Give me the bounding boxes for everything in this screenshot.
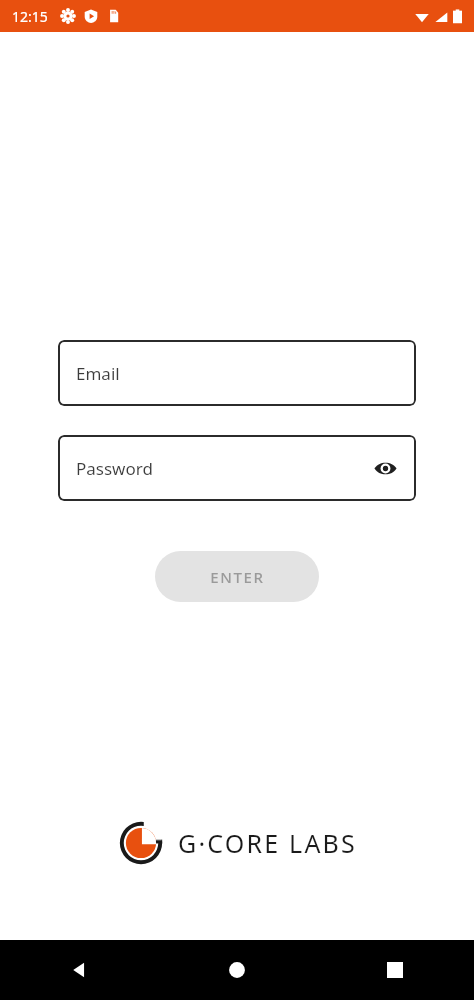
button[interactable]: Show password — [370, 453, 400, 483]
button[interactable]: Password — [58, 435, 416, 501]
button[interactable]: ENTER — [155, 551, 319, 602]
button[interactable]: Email — [58, 340, 416, 406]
staticText: 12:15 — [12, 7, 48, 26]
button[interactable]: Recent apps — [316, 940, 474, 1000]
button[interactable]: Home — [158, 940, 316, 1000]
staticText: Email — [76, 362, 120, 385]
staticText: G·CORE LABS — [178, 826, 357, 860]
staticText: Password — [76, 457, 153, 480]
staticText: ENTER — [210, 567, 265, 587]
button[interactable]: Back — [0, 940, 158, 1000]
